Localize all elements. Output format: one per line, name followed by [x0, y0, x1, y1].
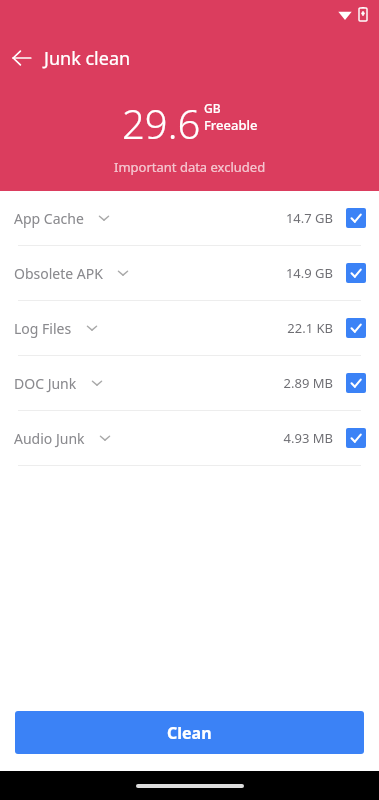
button[interactable]: App Cache: [0, 191, 379, 245]
staticText: GB: [204, 100, 221, 116]
staticText: 4.93 MB: [283, 429, 333, 447]
staticText: Log Files: [14, 319, 72, 338]
staticText: Junk clean: [44, 46, 131, 71]
button[interactable]: Select DOC Junk: [346, 373, 366, 393]
button[interactable]: Back: [0, 36, 44, 80]
staticText: DOC Junk: [14, 374, 77, 393]
staticText: 2.89 MB: [283, 374, 333, 392]
staticText: Important data excluded: [114, 158, 266, 176]
button[interactable]: Select App Cache: [346, 208, 366, 228]
button[interactable]: DOC Junk: [0, 356, 379, 410]
staticText: 14.9 GB: [285, 264, 333, 282]
staticText: 14.7 GB: [285, 209, 333, 227]
staticText: 29.6: [122, 96, 201, 150]
button[interactable]: Expand App Cache: [94, 208, 114, 228]
staticText: Freeable: [204, 116, 258, 134]
button[interactable]: Expand DOC Junk: [87, 373, 107, 393]
button[interactable]: Expand Audio Junk: [95, 428, 115, 448]
staticText: App Cache: [14, 209, 84, 228]
button[interactable]: Expand Log Files: [82, 318, 102, 338]
staticText: 22.1 KB: [287, 319, 333, 337]
button[interactable]: Expand Obsolete APK: [113, 263, 133, 283]
staticText: Obsolete APK: [14, 264, 103, 283]
staticText: Clean: [167, 722, 212, 744]
button[interactable]: Clean: [15, 711, 364, 754]
button[interactable]: Select Obsolete APK: [346, 263, 366, 283]
button[interactable]: Obsolete APK: [0, 246, 379, 300]
button[interactable]: Select Audio Junk: [346, 428, 366, 448]
button[interactable]: Audio Junk: [0, 411, 379, 465]
button[interactable]: Log Files: [0, 301, 379, 355]
button[interactable]: Select Log Files: [346, 318, 366, 338]
staticText: Audio Junk: [14, 429, 85, 448]
